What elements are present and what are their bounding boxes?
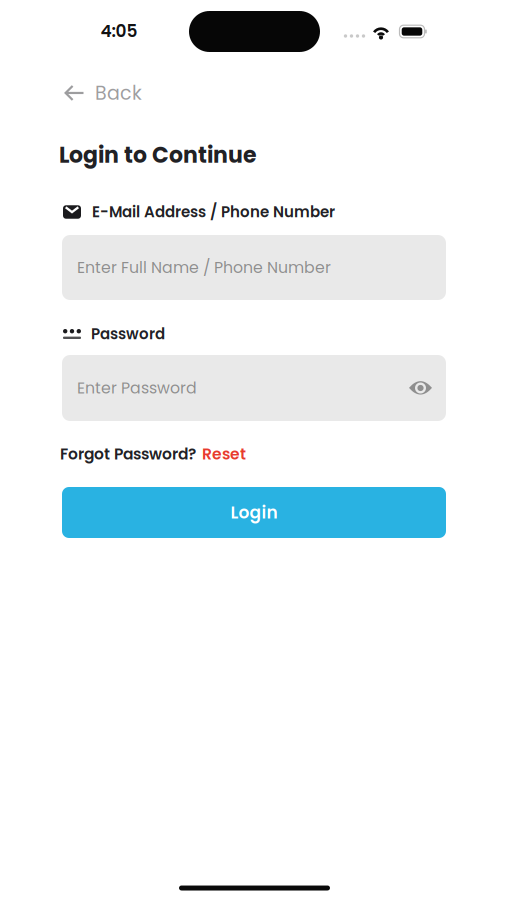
staticText: Login [230,501,277,524]
button[interactable]: E-Mail address or phone number field [62,235,446,300]
button[interactable]: Show password [409,380,432,396]
staticText: Forgot Password? [60,443,196,465]
staticText: Reset [202,443,246,465]
button[interactable]: Back [63,80,203,106]
staticText: E-Mail Address / Phone Number [92,201,335,222]
button[interactable]: Reset [202,443,246,465]
staticText: Enter Password [77,377,197,399]
staticText: Password [91,323,165,344]
button[interactable]: Login [62,487,446,538]
staticText: Back [95,80,142,106]
staticText: Login to Continue [59,140,257,170]
staticText: 4:05 [100,19,137,43]
button[interactable]: Password field [62,355,446,421]
staticText: Enter Full Name / Phone Number [77,256,331,278]
